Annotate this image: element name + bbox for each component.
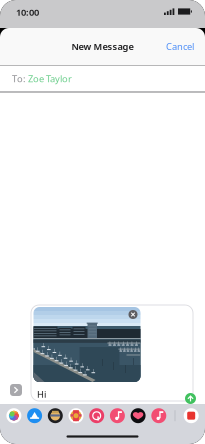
button[interactable]: Show apps [10,384,22,396]
button[interactable]: Cancel [162,35,198,58]
button[interactable]: To: [0,66,205,92]
staticText: To: [12,72,28,85]
staticText: Cancel [166,40,194,53]
staticText: New Message [71,40,133,53]
button[interactable]: Remove attachment [128,310,137,319]
button[interactable]: Music [110,408,125,423]
button[interactable]: Send [185,393,196,404]
button[interactable]: Photos [6,408,21,423]
button[interactable]: App Store [27,408,42,423]
button[interactable]: Digital Touch [131,408,146,423]
button[interactable]: Stickers [68,408,83,423]
staticText: Hi [37,388,46,400]
button[interactable]: Images [89,408,104,423]
staticText: Zoe Taylor [28,72,72,85]
button[interactable]: Memoji [48,408,63,423]
button[interactable]: Apple Music [151,408,166,423]
staticText: 10:00 [16,6,39,18]
button[interactable]: More apps [184,408,199,423]
